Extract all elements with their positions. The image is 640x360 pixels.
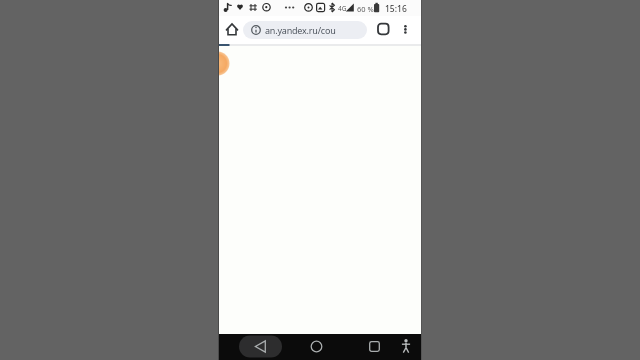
button[interactable] [395,335,417,359]
button[interactable] [239,335,282,359]
button[interactable]: an.yandex.ru/cou [243,21,367,39]
staticText: 60 % [357,4,374,14]
staticText: an.yandex.ru/cou [265,24,336,36]
button[interactable] [305,335,329,359]
staticText: 15:16 [385,3,407,15]
button[interactable] [224,22,240,38]
button[interactable] [397,20,412,40]
staticText: 4G [338,4,347,13]
button[interactable] [363,335,387,359]
button[interactable] [375,20,392,37]
